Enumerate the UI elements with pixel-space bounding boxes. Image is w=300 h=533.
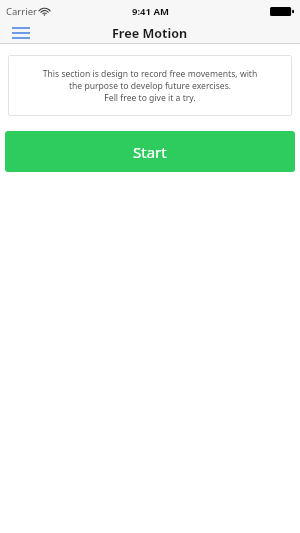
staticText: Free Motion (112, 25, 188, 42)
button[interactable]: Start (5, 131, 295, 172)
button[interactable]: Menu (8, 23, 34, 43)
staticText: Start (133, 142, 167, 162)
staticText: 9:41 AM (132, 5, 169, 18)
staticText: Fell free to give it a try. (14, 92, 286, 104)
staticText: the purpose to develop future exercises. (14, 80, 286, 92)
staticText: This section is design to record free mo… (14, 68, 286, 80)
staticText: Carrier (6, 5, 37, 18)
